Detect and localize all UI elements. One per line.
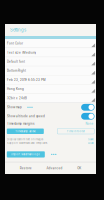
staticText: Timestamp above [15, 130, 35, 133]
button[interactable]: Default font [5, 57, 96, 66]
staticText: Time in footer [67, 130, 85, 133]
staticText: Show map [7, 106, 22, 109]
button[interactable]: Show map options [27, 106, 33, 109]
staticText: Hong Kong [7, 87, 24, 91]
staticText: Load [88, 141, 94, 145]
staticText: Display custom text on images [7, 138, 43, 141]
button[interactable]: Time in footer [57, 128, 94, 134]
button[interactable]: Watermark options [51, 153, 57, 156]
staticText: Settings [10, 27, 26, 33]
button[interactable]: Show altitude and speed [81, 113, 95, 120]
button[interactable]: Bottom Right [5, 66, 96, 75]
button[interactable]: OK [77, 166, 81, 170]
button[interactable]: 32bit x 24dB [5, 94, 96, 103]
staticText: Support watermark and templates [7, 141, 47, 145]
button[interactable]: Show map [81, 104, 95, 111]
button[interactable]: Save [88, 138, 93, 141]
staticText: Text size (Medium) [7, 51, 36, 54]
staticText: Import watermark logo [11, 153, 40, 156]
button[interactable]: Text size (Medium) [5, 48, 96, 57]
staticText: Advanced [46, 166, 62, 170]
button[interactable]: Advanced [46, 166, 62, 170]
button[interactable]: Load [88, 141, 94, 145]
staticText: Default font [7, 60, 25, 63]
staticText: None [85, 122, 93, 126]
staticText: Bottom Right [7, 69, 26, 73]
button[interactable]: Restore [20, 166, 32, 170]
staticText: OK [77, 166, 81, 170]
staticText: Timestamp margins [7, 122, 34, 126]
button[interactable]: Timestamp above [7, 128, 44, 134]
staticText: 32bit x 24dB [7, 96, 27, 100]
staticText: Show altitude and speed [7, 115, 45, 118]
staticText: Font Color [7, 42, 23, 45]
staticText: Feb 23, 2019 6:55:23 PM [7, 78, 46, 82]
button[interactable]: Feb 23, 2019 6:55:23 PM [5, 75, 96, 84]
button[interactable]: None [85, 122, 93, 126]
staticText: Save [88, 138, 93, 141]
button[interactable]: Hong Kong [5, 84, 96, 94]
staticText: Restore [20, 166, 32, 170]
button[interactable]: Import watermark logo [7, 151, 45, 157]
button[interactable]: Font Color [5, 39, 96, 48]
